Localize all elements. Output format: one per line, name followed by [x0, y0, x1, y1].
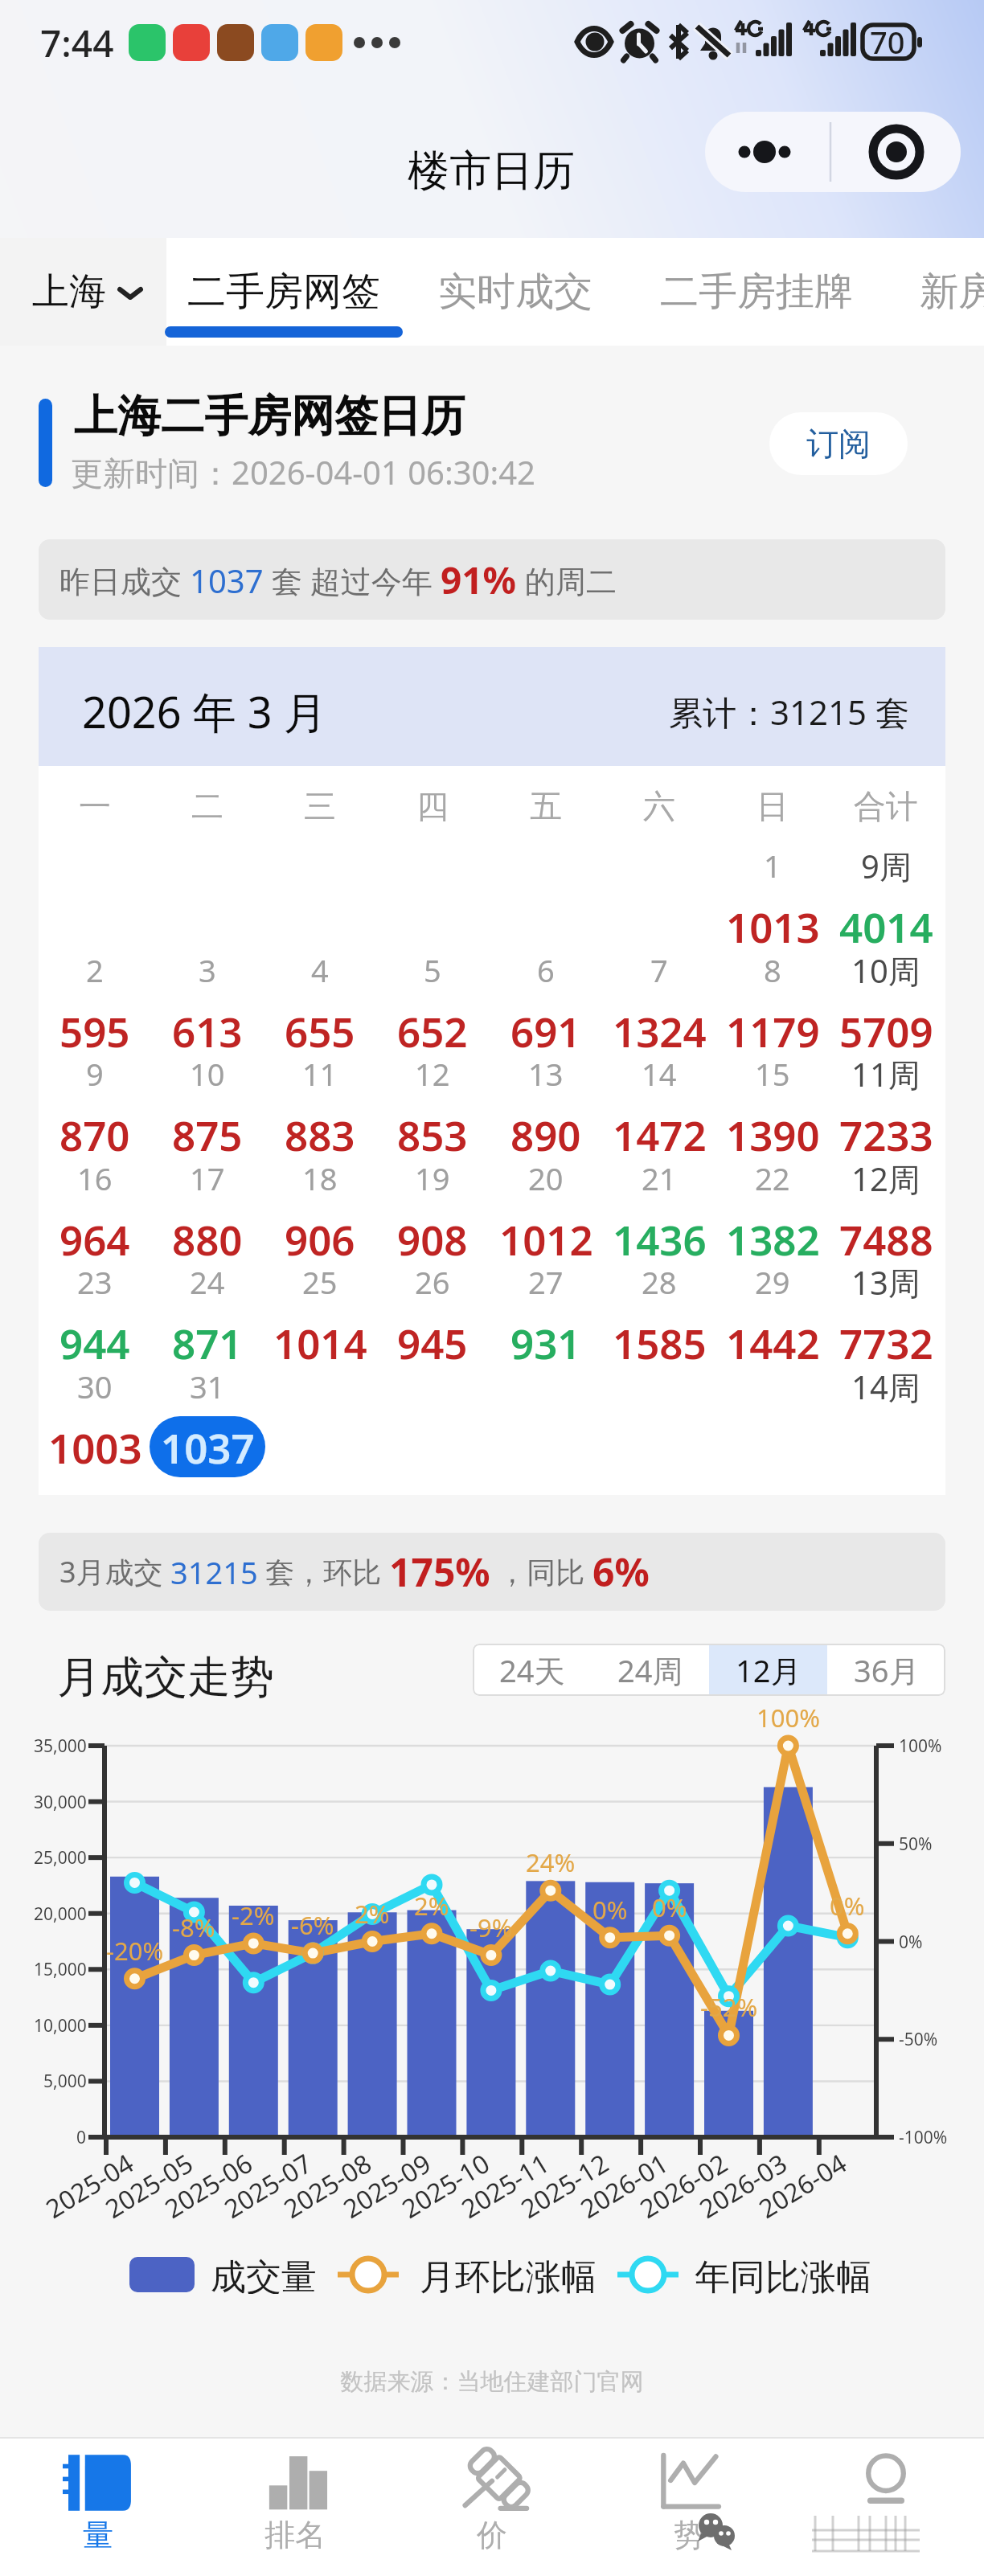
staticText: 2%: [355, 1897, 390, 1929]
staticText: 数据来源：当地住建部门官网: [0, 2367, 984, 2397]
staticText: 1037: [161, 1419, 255, 1475]
staticText: 880: [172, 1211, 243, 1267]
staticText: 上海: [32, 268, 106, 315]
button[interactable]: 24周: [591, 1644, 709, 1696]
staticText: 652: [397, 1003, 468, 1059]
staticText: -2%: [232, 1898, 275, 1931]
button[interactable]: 12月: [709, 1644, 827, 1696]
staticText: 10: [190, 1053, 225, 1095]
staticText: 12月: [736, 1649, 802, 1691]
staticText: 1013: [726, 899, 820, 954]
staticText: 1472: [613, 1107, 707, 1162]
staticText: 的周二: [517, 559, 617, 601]
staticText: 30: [77, 1366, 113, 1407]
staticText: 4014: [839, 899, 933, 954]
staticText: 1436: [613, 1211, 707, 1267]
staticText: 31: [190, 1366, 225, 1407]
staticText: 11: [302, 1053, 338, 1095]
staticText: 楼市日历: [408, 145, 575, 198]
staticText: 36月: [854, 1649, 920, 1691]
staticText: 订阅: [806, 424, 871, 464]
staticText: 35,000: [34, 1734, 87, 1758]
button[interactable]: 二手房网签: [183, 238, 384, 346]
staticText: 5,000: [43, 2070, 87, 2093]
staticText: 排名: [264, 2516, 326, 2554]
button[interactable]: 实时成交: [435, 238, 596, 346]
staticText: 上海二手房网签日历: [74, 389, 465, 444]
staticText: 月成交走势: [57, 1650, 274, 1705]
staticText: 6: [537, 949, 555, 991]
staticText: 新房: [920, 268, 984, 316]
staticText: 1382: [726, 1211, 820, 1267]
button[interactable]: 更多: [705, 112, 961, 192]
button[interactable]: 上海: [32, 238, 143, 346]
staticText: 月环比涨幅: [420, 2255, 597, 2294]
staticText: 7233: [839, 1107, 933, 1162]
staticText: 更新时间：2026-04-01 06:30:42: [71, 450, 535, 494]
staticText: 量: [83, 2516, 113, 2554]
staticText: 691: [510, 1003, 581, 1059]
staticText: 11周: [851, 1052, 920, 1096]
staticText: 4: [311, 949, 329, 991]
staticText: 964: [59, 1211, 130, 1267]
staticText: 7: [650, 949, 668, 991]
button[interactable]: 价: [393, 2437, 590, 2576]
staticText: 2025-05: [98, 2145, 198, 2223]
staticText: 15: [755, 1053, 790, 1095]
staticText: 23: [77, 1261, 113, 1303]
staticText: 7488: [839, 1211, 933, 1267]
staticText: 1037: [190, 559, 264, 602]
staticText: 1: [764, 845, 781, 887]
staticText: 28: [642, 1261, 677, 1303]
staticText: 2025-04: [39, 2145, 139, 2223]
staticText: 二手房网签: [187, 268, 380, 316]
button[interactable]: 24天: [473, 1644, 591, 1696]
staticText: 14: [642, 1053, 677, 1095]
staticText: 3月成交: [59, 1552, 170, 1591]
button[interactable]: 排名: [196, 2437, 393, 2576]
staticText: 26: [415, 1261, 450, 1303]
staticText: 14周: [851, 1365, 920, 1409]
staticText: 24%: [526, 1845, 576, 1878]
staticText: 10,000: [34, 2014, 87, 2037]
staticText: 2026 年 3 月: [82, 682, 327, 741]
staticText: 12周: [851, 1157, 920, 1201]
staticText: 12: [415, 1053, 450, 1095]
staticText: 套 超过今年: [264, 559, 441, 601]
button[interactable]: 势: [590, 2437, 787, 2576]
staticText: 24天: [499, 1649, 565, 1691]
staticText: 175%: [389, 1546, 490, 1598]
staticText: 29: [755, 1261, 790, 1303]
staticText: 1012: [499, 1211, 593, 1267]
staticText: 2025-10: [395, 2145, 495, 2223]
staticText: 8: [764, 949, 781, 991]
staticText: 9: [86, 1053, 104, 1095]
staticText: 100%: [756, 1701, 820, 1733]
staticText: 25: [302, 1261, 338, 1303]
staticText: 2025-06: [158, 2145, 258, 2223]
button[interactable]: 量: [0, 2437, 196, 2576]
staticText: 655: [285, 1003, 355, 1059]
staticText: 势: [674, 2516, 704, 2554]
staticText: 50%: [899, 1833, 933, 1856]
staticText: 合计: [854, 786, 918, 826]
staticText: 实时成交: [438, 268, 592, 316]
staticText: 31215: [170, 1551, 258, 1593]
staticText: 2: [86, 949, 104, 991]
staticText: 四: [416, 786, 449, 826]
button[interactable]: 订阅: [769, 412, 908, 475]
staticText: 2025-07: [217, 2145, 317, 2223]
button[interactable]: 新房: [894, 238, 984, 346]
staticText: 0%: [899, 1931, 923, 1954]
staticText: 6%: [592, 1546, 650, 1598]
staticText: 15,000: [34, 1958, 87, 1981]
staticText: 870: [59, 1107, 130, 1162]
staticText: 0: [76, 2126, 87, 2149]
staticText: 16: [77, 1157, 113, 1199]
button[interactable]: 36月: [827, 1644, 945, 1696]
staticText: 1179: [726, 1003, 820, 1059]
staticText: 昨日成交: [59, 559, 190, 601]
staticText: 累计：31215 套: [669, 689, 910, 735]
button[interactable]: 我的: [787, 2437, 984, 2576]
button[interactable]: 二手房挂牌: [656, 238, 857, 346]
